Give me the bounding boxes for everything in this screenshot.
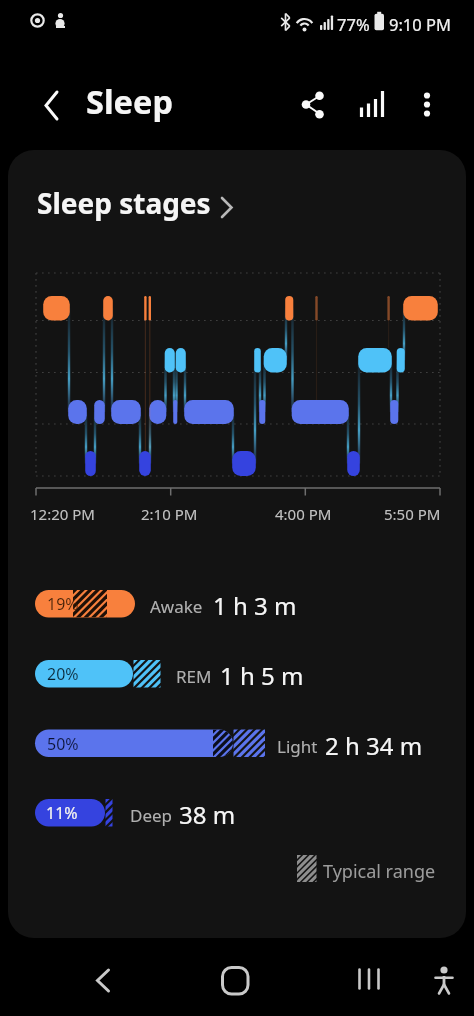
staticText: 77% [337,13,370,35]
staticText: 12:20 PM [30,504,95,524]
staticText: Awake [150,595,203,618]
staticText: 20% [47,663,79,685]
staticText: Sleep stages [37,184,211,222]
staticText: 4:00 PM [275,504,332,524]
staticText: 19% [47,593,79,615]
button[interactable] [28,82,74,128]
staticText: Deep [130,804,173,827]
staticText: 5:50 PM [384,504,441,524]
staticText: 2:10 PM [141,504,198,524]
button[interactable] [288,85,330,127]
staticText: Sleep [86,79,173,123]
button[interactable] [340,956,398,1006]
staticText: 11% [46,802,78,824]
button[interactable] [78,956,138,1006]
button[interactable] [424,956,466,1006]
staticText: 1 h 3 m [213,589,297,622]
button[interactable] [24,176,244,232]
button[interactable] [352,85,394,127]
staticText: 38 m [179,798,236,831]
button[interactable] [408,85,448,127]
staticText: 2 h 34 m [325,729,423,762]
staticText: 9:10 PM [389,13,451,35]
staticText: 1 h 5 m [220,659,304,692]
staticText: 50% [47,733,79,755]
button[interactable] [205,956,267,1006]
staticText: Typical range [323,859,436,884]
staticText: Light [277,735,318,758]
staticText: REM [176,665,212,688]
